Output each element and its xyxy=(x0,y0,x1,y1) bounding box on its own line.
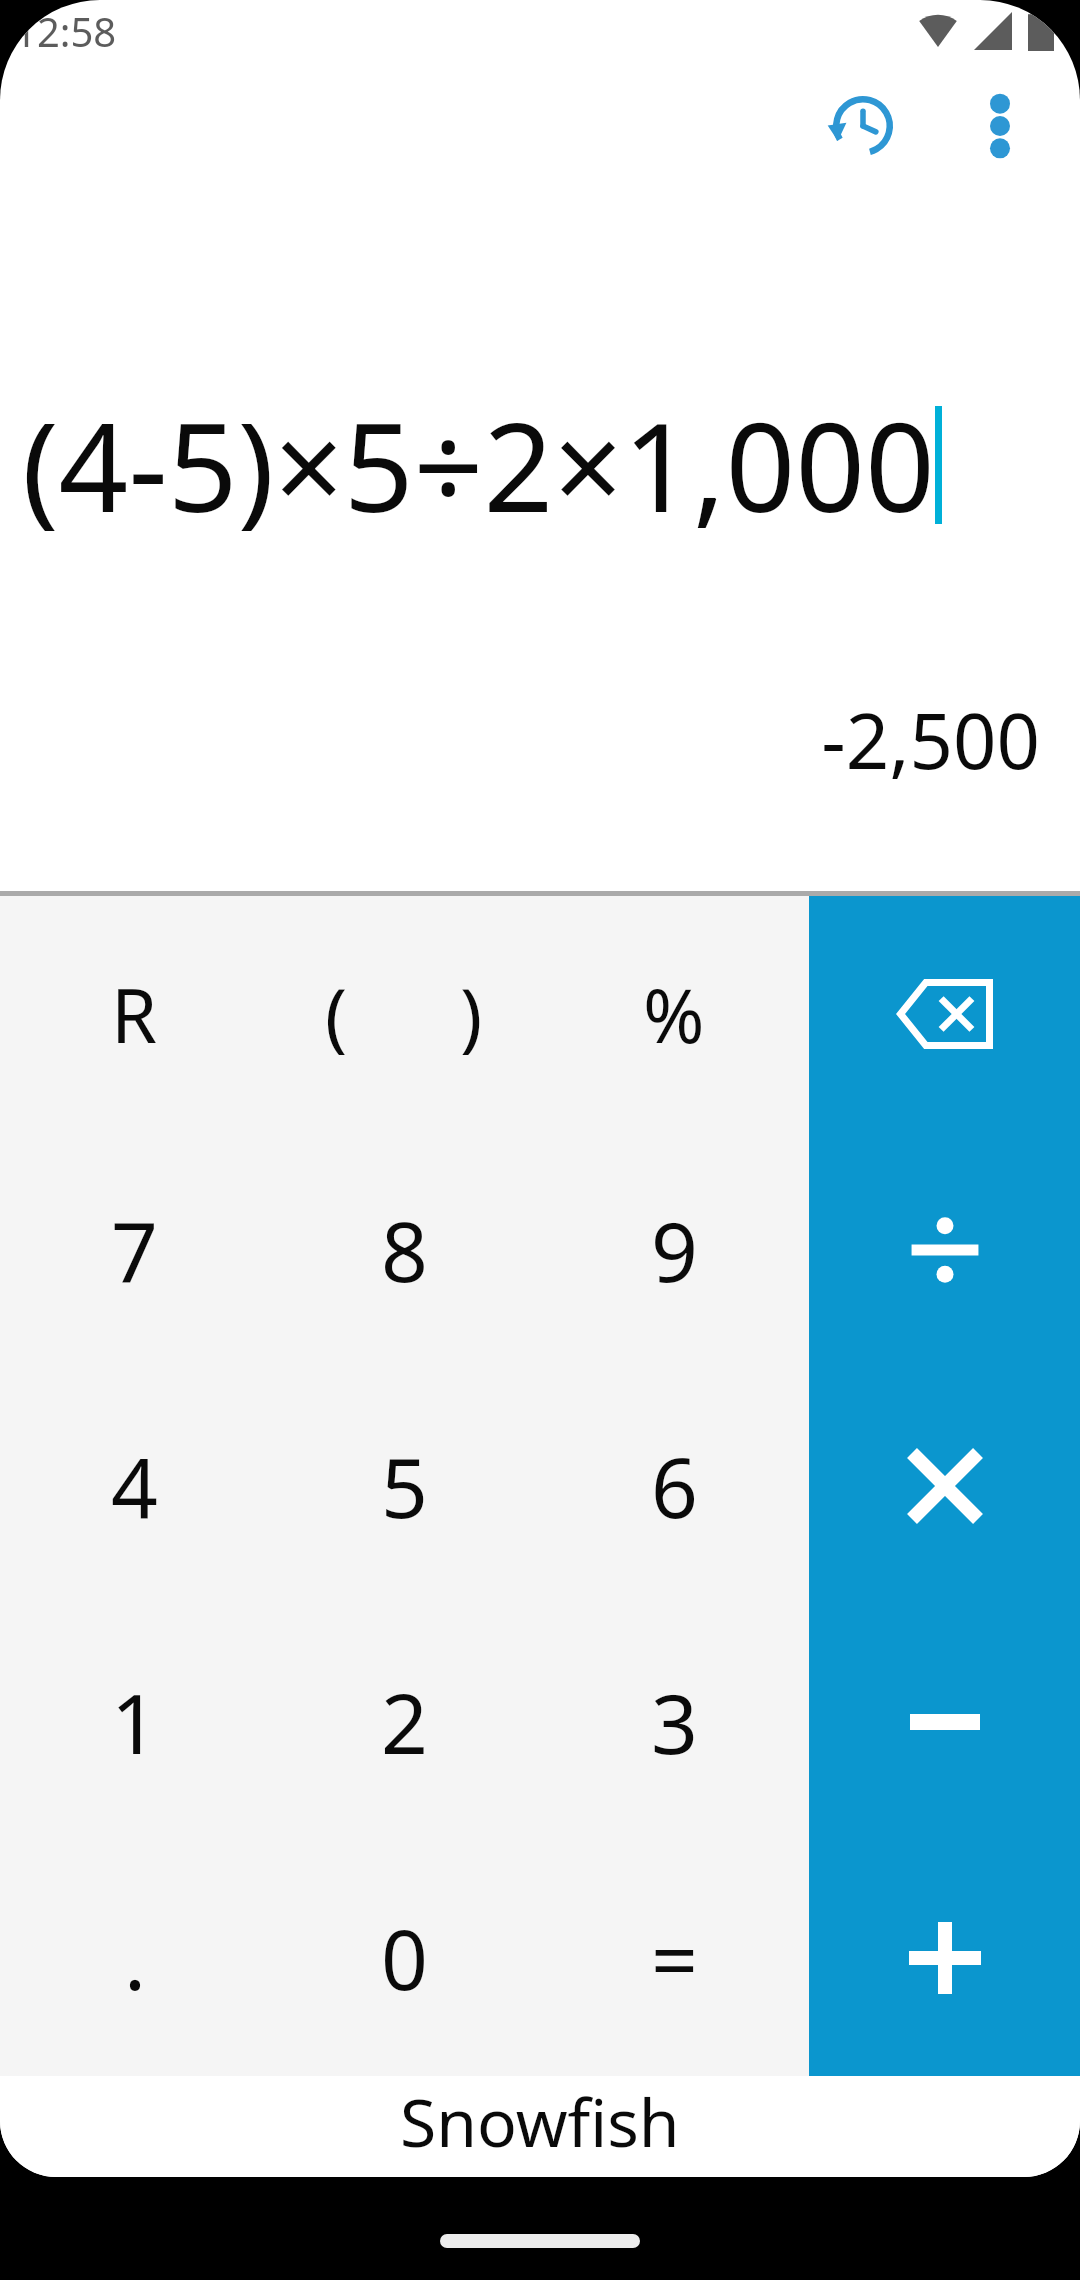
button[interactable]: 8 xyxy=(269,1132,539,1368)
button[interactable]: 3 xyxy=(539,1604,809,1840)
staticText: 6 xyxy=(651,1430,698,1542)
staticText: ) xyxy=(460,964,483,1065)
button[interactable]: More options xyxy=(950,76,1050,176)
staticText: 1 xyxy=(111,1666,158,1778)
button[interactable]: ( xyxy=(269,896,404,1132)
staticText: 7 xyxy=(111,1194,158,1306)
staticText: Snowfish xyxy=(400,2076,680,2166)
button[interactable]: Delete xyxy=(809,896,1080,1132)
staticText: (4-5)×5÷2×1,000 xyxy=(22,382,935,548)
button[interactable]: Snowfish xyxy=(0,2076,1080,2177)
button[interactable]: 5 xyxy=(269,1368,539,1604)
button[interactable]: 6 xyxy=(539,1368,809,1604)
button[interactable]: History xyxy=(808,71,918,181)
button[interactable]: Add xyxy=(809,1840,1080,2076)
button[interactable]: = xyxy=(539,1840,809,2076)
staticText: 8 xyxy=(381,1194,428,1306)
button[interactable]: 9 xyxy=(539,1132,809,1368)
staticText: . xyxy=(124,1902,146,2014)
staticText: ( xyxy=(325,964,348,1065)
staticText: 0 xyxy=(381,1902,428,2014)
staticText: = xyxy=(651,1902,698,2014)
staticText: -2,500 xyxy=(821,688,1040,792)
button[interactable]: 2 xyxy=(269,1604,539,1840)
button[interactable]: 4 xyxy=(0,1368,269,1604)
button[interactable]: % xyxy=(539,896,809,1132)
staticText: 12:58 xyxy=(14,4,117,58)
button[interactable]: . xyxy=(0,1840,269,2076)
staticText: R xyxy=(111,964,158,1065)
button[interactable]: 1 xyxy=(0,1604,269,1840)
button[interactable]: Divide xyxy=(809,1132,1080,1368)
button[interactable]: ) xyxy=(404,896,539,1132)
button[interactable]: 7 xyxy=(0,1132,269,1368)
button[interactable]: Subtract xyxy=(809,1604,1080,1840)
staticText: 9 xyxy=(651,1194,698,1306)
button[interactable]: 0 xyxy=(269,1840,539,2076)
staticText: 3 xyxy=(651,1666,698,1778)
staticText: % xyxy=(643,964,705,1065)
staticText: 2 xyxy=(381,1666,428,1778)
button[interactable]: Multiply xyxy=(809,1368,1080,1604)
staticText: 4 xyxy=(111,1430,158,1542)
button[interactable]: R xyxy=(0,896,269,1132)
staticText: 5 xyxy=(381,1430,428,1542)
